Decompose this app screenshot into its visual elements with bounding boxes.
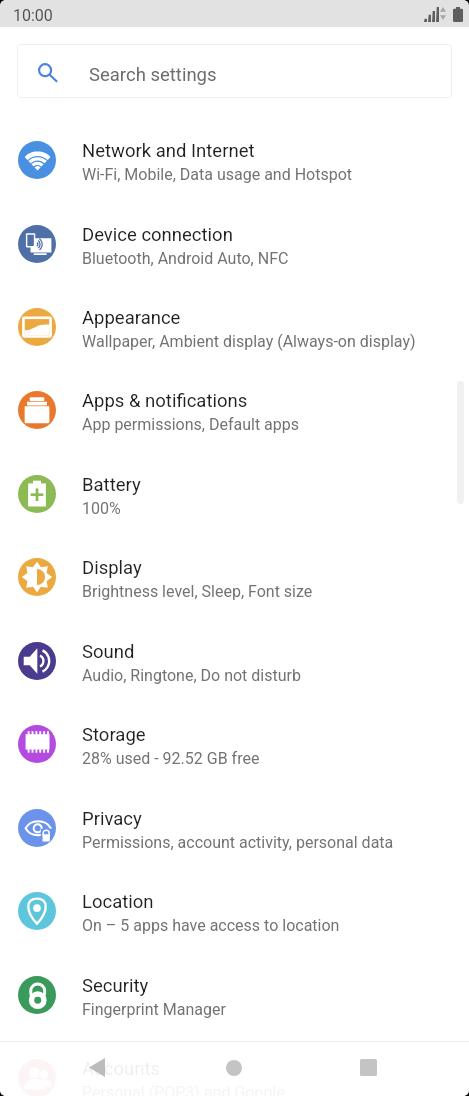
staticText: On – 5 apps have access to location xyxy=(82,916,340,935)
button[interactable]: Home xyxy=(210,1041,258,1096)
button[interactable]: Battery xyxy=(0,452,469,535)
staticText: 28% used - 92.52 GB free xyxy=(82,749,260,768)
button[interactable]: Privacy xyxy=(0,786,469,869)
staticText: Permissions, account activity, personal … xyxy=(82,833,394,852)
staticText: Audio, Ringtone, Do not disturb xyxy=(82,666,301,685)
staticText: Bluetooth, Android Auto, NFC xyxy=(82,249,289,268)
staticText: Accounts xyxy=(82,1058,161,1080)
staticText: Appearance xyxy=(82,307,181,329)
button[interactable]: Recents xyxy=(344,1041,392,1096)
staticText: App permissions, Default apps xyxy=(82,415,300,434)
staticText: Display xyxy=(82,557,142,579)
staticText: Apps & notifications xyxy=(82,390,248,412)
staticText: Network and Internet xyxy=(82,140,255,162)
staticText: Brightness level, Sleep, Font size xyxy=(82,582,313,601)
button[interactable]: Security xyxy=(0,953,469,1036)
staticText: Fingerprint Manager xyxy=(82,1000,226,1019)
staticText: Battery xyxy=(82,474,141,496)
button[interactable]: Accounts xyxy=(0,1036,469,1096)
staticText: Personal (POP3) and Google xyxy=(82,1083,285,1096)
button[interactable]: Apps & notifications xyxy=(0,368,469,451)
button[interactable]: Network and Internet xyxy=(0,118,469,201)
staticText: Storage xyxy=(82,724,146,746)
staticText: Search settings xyxy=(89,64,217,86)
staticText: 100% xyxy=(82,499,121,518)
button[interactable]: Appearance xyxy=(0,285,469,368)
staticText: Security xyxy=(82,975,149,997)
staticText: Privacy xyxy=(82,808,142,830)
button[interactable]: Device connection xyxy=(0,202,469,285)
staticText: Location xyxy=(82,891,154,913)
staticText: 10:00 xyxy=(13,6,53,25)
button[interactable]: Display xyxy=(0,535,469,618)
button[interactable]: Sound xyxy=(0,619,469,702)
button[interactable]: Search settings xyxy=(17,44,452,98)
staticText: Wallpaper, Ambient display (Always-on di… xyxy=(82,332,416,351)
button[interactable]: Back xyxy=(73,1041,121,1096)
staticText: Wi-Fi, Mobile, Data usage and Hotspot xyxy=(82,165,353,184)
button[interactable]: Location xyxy=(0,869,469,952)
staticText: Sound xyxy=(82,641,135,663)
button[interactable]: Storage xyxy=(0,702,469,785)
staticText: Device connection xyxy=(82,224,233,246)
